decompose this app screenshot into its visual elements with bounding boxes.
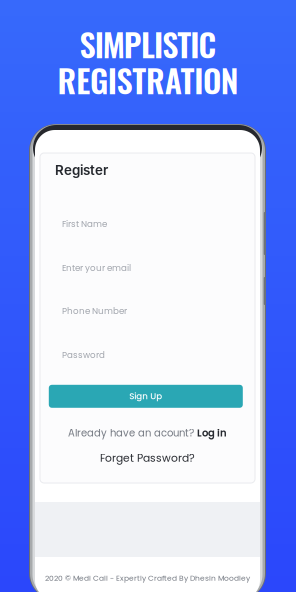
button[interactable]: Already have an acount?: [40, 425, 255, 441]
staticText: Register: [55, 162, 108, 178]
staticText: 2020 © Medi Call - Expertly Crafted By D…: [45, 573, 250, 583]
staticText: Password: [62, 349, 105, 361]
staticText: REGISTRATION: [57, 56, 239, 103]
button[interactable]: Sign Up: [49, 385, 243, 408]
staticText: Forget Password?: [100, 450, 195, 465]
staticText: Sign Up: [129, 390, 162, 402]
staticText: SIMPLISTIC: [80, 20, 216, 67]
staticText: Phone Number: [62, 305, 127, 317]
staticText: Log in: [197, 426, 227, 440]
staticText: Already have an acount?: [68, 426, 194, 440]
button[interactable]: Forget Password?: [40, 450, 255, 466]
staticText: First Name: [62, 218, 107, 230]
staticText: Enter your email: [62, 262, 131, 274]
